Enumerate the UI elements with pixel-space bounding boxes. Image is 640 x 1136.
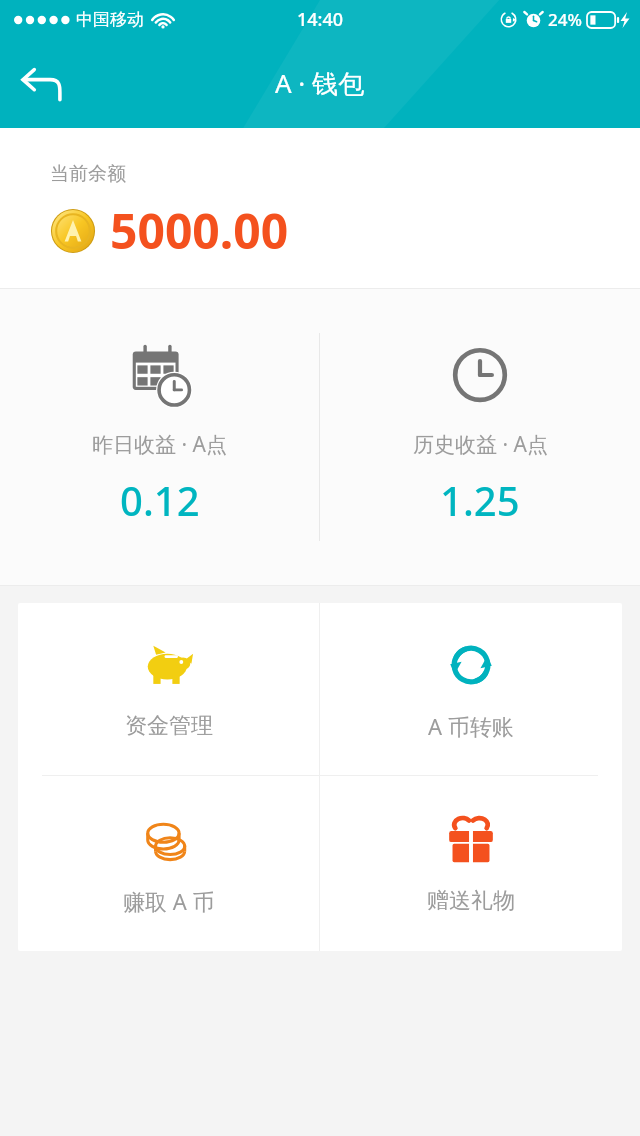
button[interactable]: 资金管理 <box>18 603 319 775</box>
staticText: 昨日收益 · A点 <box>92 430 227 459</box>
staticText: 5000.00 <box>110 198 289 263</box>
staticText: 赠送礼物 <box>427 887 515 915</box>
button[interactable]: 赚取 A 币 <box>18 776 319 951</box>
staticText: 0.12 <box>120 473 200 527</box>
button[interactable]: Back <box>8 50 74 116</box>
staticText: 赚取 A 币 <box>123 886 215 916</box>
staticText: 24% <box>548 8 582 31</box>
staticText: A 币转账 <box>428 711 514 741</box>
button[interactable]: A 币转账 <box>320 603 622 775</box>
staticText: 资金管理 <box>125 712 213 740</box>
staticText: 当前余额 <box>50 162 126 186</box>
staticText: 中国移动 <box>76 9 144 30</box>
button[interactable]: 历史收益 · A点 <box>320 289 640 585</box>
button[interactable]: 昨日收益 · A点 <box>0 289 319 585</box>
staticText: A · 钱包 <box>275 65 365 101</box>
staticText: 历史收益 · A点 <box>413 430 548 459</box>
staticText: 14:40 <box>297 7 344 32</box>
staticText: 1.25 <box>440 473 520 527</box>
button[interactable]: 赠送礼物 <box>320 776 622 951</box>
